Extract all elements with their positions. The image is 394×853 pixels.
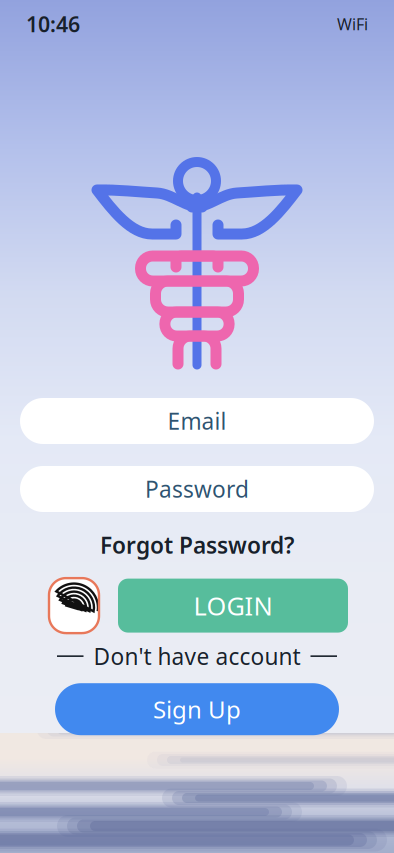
staticText: 10:46: [26, 10, 80, 38]
button[interactable]: Email: [20, 398, 374, 444]
button[interactable]: LOGIN: [118, 579, 348, 633]
staticText: Email: [167, 406, 226, 436]
staticText: WiFi: [337, 13, 368, 35]
button[interactable]: Forgot Password?: [100, 530, 294, 560]
staticText: LOGIN: [193, 589, 272, 622]
staticText: Password: [145, 474, 249, 504]
button[interactable]: Password: [20, 466, 374, 512]
button[interactable]: Sign Up: [55, 683, 339, 735]
staticText: Forgot Password?: [100, 530, 294, 560]
button[interactable]: Sign in with fingerprint: [49, 578, 99, 633]
staticText: Don't have account: [93, 641, 300, 671]
staticText: Sign Up: [153, 693, 241, 725]
